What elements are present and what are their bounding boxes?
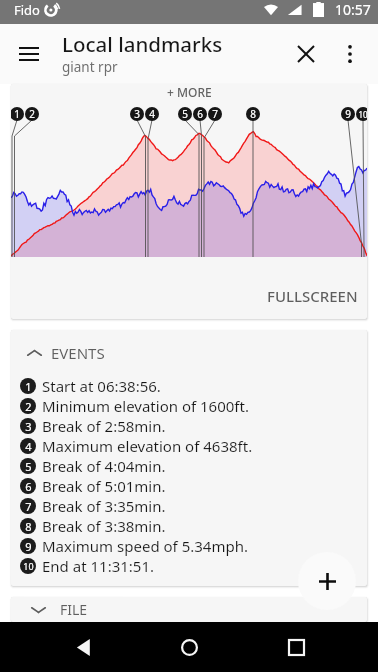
- staticText: Local landmarks: [62, 30, 223, 58]
- staticText: 1: [25, 379, 32, 394]
- button[interactable]: 5: [20, 456, 367, 476]
- button[interactable]: 6: [20, 476, 367, 496]
- staticText: FILE: [60, 600, 88, 619]
- button[interactable]: 10: [20, 556, 367, 576]
- staticText: 10: [23, 560, 34, 572]
- staticText: 4: [25, 439, 32, 454]
- staticText: FULLSCREEN: [267, 286, 358, 306]
- button[interactable]: Close: [282, 30, 330, 78]
- button[interactable]: 8: [20, 516, 367, 536]
- button[interactable]: 9: [20, 536, 367, 556]
- staticText: 9: [345, 107, 351, 121]
- staticText: Fido: [14, 1, 40, 19]
- staticText: Break of 2:58min.: [42, 416, 166, 436]
- staticText: 9: [25, 539, 32, 554]
- staticText: Break of 5:01min.: [42, 476, 166, 496]
- staticText: + MORE: [167, 84, 212, 98]
- button[interactable]: 4: [20, 436, 367, 456]
- button[interactable]: 1: [20, 376, 367, 396]
- button[interactable]: Back: [59, 623, 107, 671]
- staticText: 3: [134, 107, 140, 121]
- staticText: 7: [25, 499, 32, 514]
- staticText: Break of 4:04min.: [42, 456, 166, 476]
- staticText: Break of 3:38min.: [42, 516, 166, 536]
- button[interactable]: 2: [20, 396, 367, 416]
- staticText: 5: [25, 459, 32, 474]
- staticText: Maximum speed of 5.34mph.: [42, 536, 248, 556]
- staticText: EVENTS: [51, 343, 105, 363]
- staticText: Minimum elevation of 1600ft.: [42, 396, 249, 416]
- staticText: 10:57: [335, 0, 371, 19]
- button[interactable]: EVENTS: [11, 330, 367, 376]
- staticText: 7: [212, 107, 218, 121]
- button[interactable]: FULLSCREEN: [263, 282, 362, 310]
- staticText: 5: [182, 107, 188, 121]
- staticText: 10: [358, 109, 367, 120]
- staticText: 6: [25, 479, 32, 494]
- button[interactable]: Add: [298, 552, 356, 610]
- staticText: 3: [25, 419, 32, 434]
- staticText: 2: [25, 399, 32, 414]
- button[interactable]: 7: [20, 496, 367, 516]
- staticText: 4: [149, 107, 155, 121]
- button[interactable]: + MORE: [11, 84, 367, 98]
- staticText: 6: [197, 107, 203, 121]
- button[interactable]: FILE: [11, 597, 367, 622]
- button[interactable]: 3: [20, 416, 367, 436]
- button[interactable]: Home: [165, 623, 213, 671]
- staticText: 2: [29, 107, 35, 121]
- staticText: Break of 3:35min.: [42, 496, 166, 516]
- button[interactable]: Navigation menu: [5, 30, 53, 78]
- staticText: Start at 06:38:56.: [42, 376, 161, 396]
- button[interactable]: Recent apps: [272, 623, 320, 671]
- staticText: End at 11:31:51.: [42, 556, 155, 576]
- staticText: giant rpr: [62, 58, 118, 76]
- staticText: 1: [14, 107, 20, 121]
- staticText: Maximum elevation of 4638ft.: [42, 436, 253, 456]
- staticText: 8: [250, 107, 256, 121]
- button[interactable]: More options: [326, 30, 374, 78]
- staticText: 8: [25, 519, 32, 534]
